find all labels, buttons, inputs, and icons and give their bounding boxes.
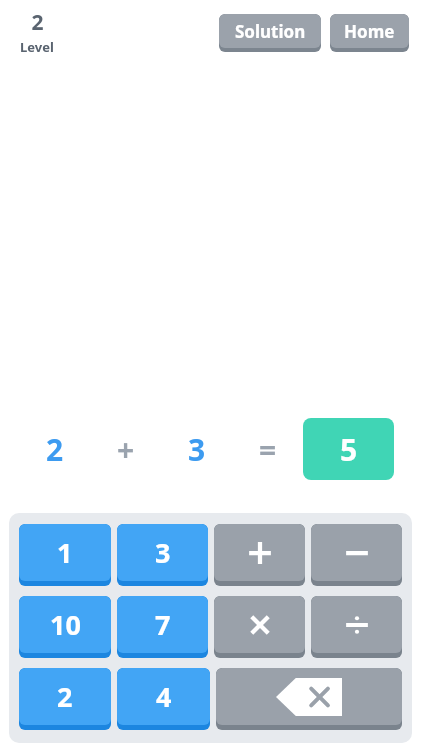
button[interactable]: Solution: [219, 14, 321, 52]
button[interactable]: 2: [19, 668, 111, 730]
button[interactable]: 2: [10, 8, 64, 56]
button[interactable]: =: [232, 418, 303, 480]
button[interactable]: +: [90, 418, 161, 480]
button[interactable]: Divide: [311, 596, 402, 658]
staticText: 1: [57, 534, 73, 571]
staticText: 5: [340, 429, 358, 470]
staticText: Level: [20, 38, 54, 56]
button[interactable]: 7: [117, 596, 208, 658]
staticText: =: [259, 429, 277, 470]
button[interactable]: Minus: [311, 524, 402, 586]
button[interactable]: Home: [330, 14, 409, 52]
staticText: 2: [57, 678, 73, 715]
button[interactable]: 10: [19, 596, 111, 658]
staticText: 2: [31, 8, 44, 37]
button[interactable]: Plus: [214, 524, 305, 586]
staticText: 4: [156, 678, 172, 715]
staticText: 3: [188, 429, 206, 470]
staticText: Solution: [235, 20, 306, 43]
staticText: 2: [46, 429, 64, 470]
button[interactable]: 5: [303, 418, 394, 480]
button[interactable]: Backspace: [216, 668, 402, 730]
button[interactable]: 4: [117, 668, 210, 730]
button[interactable]: 1: [19, 524, 111, 586]
button[interactable]: 2: [19, 418, 90, 480]
staticText: 3: [155, 534, 171, 571]
staticText: 10: [50, 606, 81, 643]
button[interactable]: Multiply: [214, 596, 305, 658]
button[interactable]: 3: [161, 418, 232, 480]
button[interactable]: 3: [117, 524, 208, 586]
staticText: Home: [344, 20, 395, 43]
staticText: 7: [155, 606, 171, 643]
staticText: +: [117, 429, 135, 470]
